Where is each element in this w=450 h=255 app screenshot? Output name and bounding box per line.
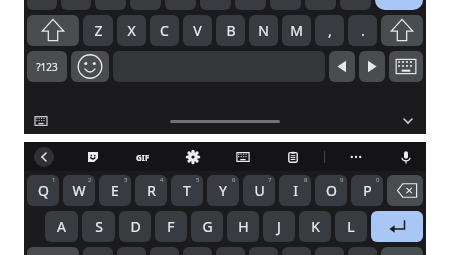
button[interactable]: Shift — [381, 15, 423, 46]
button[interactable] — [27, 0, 57, 10]
staticText: 0 — [376, 176, 380, 184]
staticText: . — [361, 21, 365, 40]
button[interactable] — [216, 247, 245, 255]
button[interactable] — [117, 247, 146, 255]
button[interactable]: Enter — [371, 211, 423, 242]
button[interactable] — [183, 247, 212, 255]
button[interactable] — [27, 247, 79, 255]
staticText: H — [238, 217, 249, 236]
button[interactable]: O — [315, 175, 347, 206]
button[interactable]: U — [243, 175, 275, 206]
button[interactable]: E — [99, 175, 131, 206]
button[interactable]: Settings — [183, 147, 203, 167]
button[interactable] — [165, 0, 196, 10]
button[interactable]: C — [150, 15, 179, 46]
button[interactable]: A — [45, 211, 78, 242]
button[interactable]: J — [263, 211, 295, 242]
button[interactable]: Stickers — [83, 147, 103, 167]
staticText: E — [111, 181, 119, 200]
button[interactable]: D — [119, 211, 151, 242]
button[interactable] — [249, 247, 278, 255]
staticText: F — [167, 217, 175, 236]
button[interactable]: Hide keyboard — [398, 111, 418, 131]
staticText: GIF — [136, 152, 150, 163]
button[interactable] — [200, 0, 231, 10]
button[interactable]: , — [315, 15, 344, 46]
staticText: 7 — [268, 176, 272, 184]
button[interactable]: P — [351, 175, 383, 206]
button[interactable]: L — [335, 211, 367, 242]
button[interactable] — [282, 247, 311, 255]
button[interactable] — [381, 247, 423, 255]
button[interactable] — [270, 0, 301, 10]
staticText: C — [160, 21, 169, 40]
staticText: D — [130, 217, 141, 236]
button[interactable]: Move cursor left — [329, 51, 355, 82]
button[interactable]: Switch keyboard — [32, 112, 50, 130]
button[interactable]: T — [171, 175, 203, 206]
staticText: 3 — [124, 176, 128, 184]
button[interactable]: X — [117, 15, 146, 46]
staticText: 5 — [196, 176, 200, 184]
button[interactable]: K — [299, 211, 331, 242]
button[interactable] — [315, 247, 344, 255]
button[interactable] — [83, 247, 113, 255]
button[interactable]: W — [63, 175, 95, 206]
button[interactable]: R — [135, 175, 167, 206]
button[interactable]: Keyboard settings — [389, 51, 423, 82]
button[interactable] — [375, 0, 423, 10]
button[interactable]: . — [348, 15, 377, 46]
button[interactable]: Back — [34, 147, 54, 167]
staticText: B — [226, 21, 236, 40]
button[interactable]: Y — [207, 175, 239, 206]
button[interactable] — [348, 247, 377, 255]
staticText: P — [363, 181, 372, 200]
button[interactable]: Emoji keyboard — [233, 147, 253, 167]
staticText: M — [290, 21, 303, 40]
staticText: N — [258, 21, 269, 40]
button[interactable]: Z — [83, 15, 113, 46]
button[interactable] — [340, 0, 371, 10]
button[interactable]: More options — [346, 147, 366, 167]
button[interactable]: GIF — [132, 146, 154, 168]
button[interactable]: Clipboard — [283, 147, 303, 167]
button[interactable]: G — [191, 211, 223, 242]
button[interactable]: Backspace — [387, 175, 423, 206]
button[interactable]: B — [216, 15, 245, 46]
staticText: Y — [219, 181, 227, 200]
button[interactable]: M — [282, 15, 311, 46]
button[interactable]: V — [183, 15, 212, 46]
staticText: R — [147, 181, 156, 200]
button[interactable]: H — [227, 211, 259, 242]
button[interactable] — [150, 247, 179, 255]
button[interactable]: F — [155, 211, 187, 242]
staticText: G — [202, 217, 213, 236]
button[interactable]: Q — [27, 175, 59, 206]
staticText: ?123 — [36, 60, 58, 74]
button[interactable]: ?123 — [27, 51, 67, 82]
button[interactable] — [235, 0, 266, 10]
staticText: T — [183, 181, 191, 200]
staticText: A — [57, 217, 66, 236]
button[interactable]: N — [249, 15, 278, 46]
staticText: U — [254, 181, 265, 200]
button[interactable]: Move cursor right — [359, 51, 385, 82]
staticText: 4 — [160, 176, 164, 184]
staticText: K — [311, 217, 320, 236]
button[interactable] — [95, 0, 126, 10]
staticText: O — [326, 181, 337, 200]
button[interactable]: Shift — [27, 15, 79, 46]
button[interactable] — [305, 0, 336, 10]
button[interactable] — [61, 0, 91, 10]
button[interactable]: S — [82, 211, 115, 242]
staticText: J — [277, 217, 281, 236]
button[interactable] — [130, 0, 161, 10]
staticText: I — [293, 181, 298, 200]
button[interactable]: Voice input — [396, 147, 416, 167]
button[interactable]: Emoji — [71, 51, 109, 82]
button[interactable]: I — [279, 175, 311, 206]
staticText: Z — [94, 21, 103, 40]
staticText: 8 — [304, 176, 308, 184]
staticText: 9 — [340, 176, 344, 184]
